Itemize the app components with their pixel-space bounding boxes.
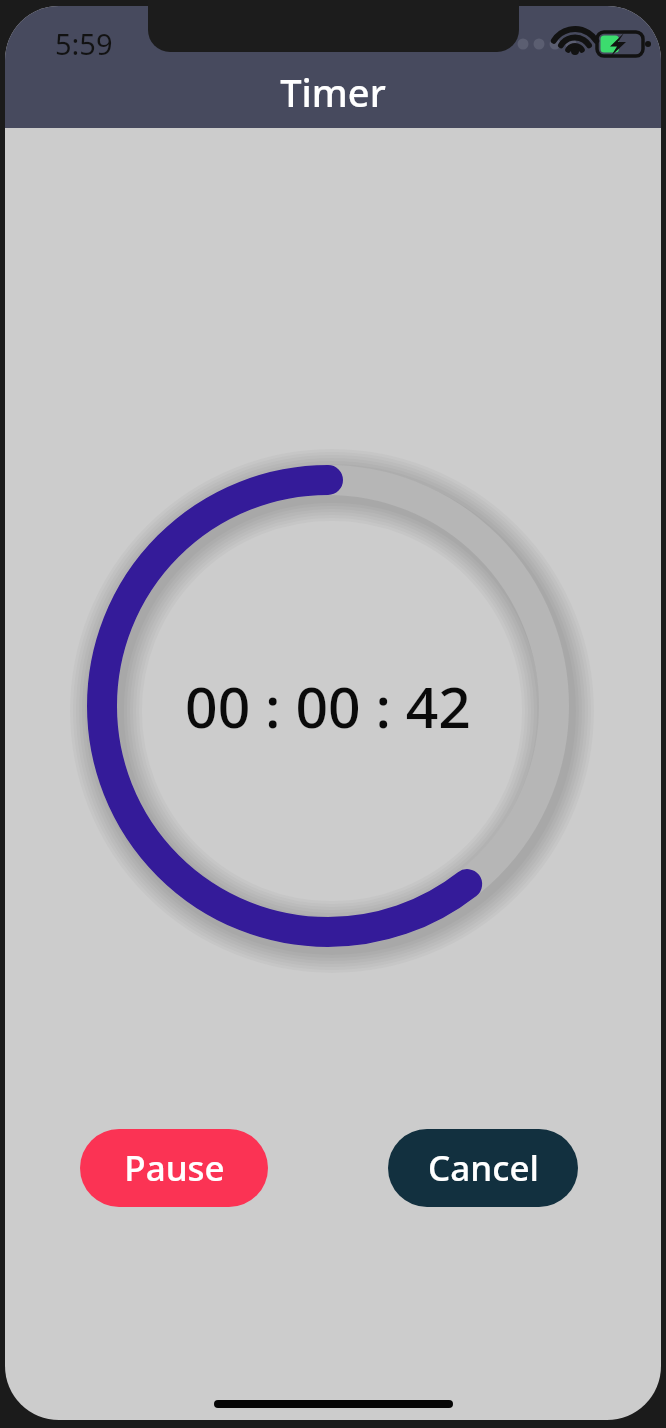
staticText: Pause xyxy=(124,1144,225,1192)
staticText: Timer xyxy=(5,66,661,118)
staticText: 00 : 00 : 42 xyxy=(185,667,471,745)
staticText: 5:59 xyxy=(55,24,113,63)
button[interactable]: Cancel xyxy=(388,1129,578,1207)
button[interactable]: Pause xyxy=(80,1129,268,1207)
staticText: Cancel xyxy=(428,1144,539,1192)
